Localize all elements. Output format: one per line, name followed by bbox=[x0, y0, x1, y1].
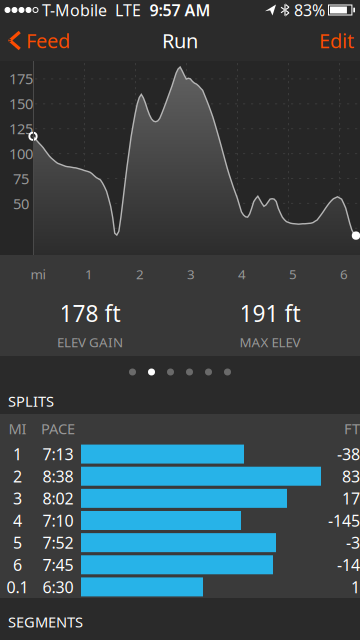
staticText: 178 ft bbox=[59, 298, 120, 328]
staticText: 7:10 bbox=[42, 510, 73, 531]
staticText: 6 bbox=[13, 554, 22, 575]
staticText: 2 bbox=[13, 466, 22, 487]
staticText: 4 bbox=[238, 265, 246, 283]
button[interactable]: Feed bbox=[0, 20, 78, 61]
staticText: 150 bbox=[9, 94, 33, 113]
staticText: -14 bbox=[337, 554, 360, 575]
staticText: 191 ft bbox=[239, 298, 300, 328]
staticText: 1 bbox=[13, 443, 22, 465]
staticText: ELEV GAIN bbox=[57, 333, 123, 351]
staticText: 7:52 bbox=[42, 532, 73, 553]
staticText: 9:57 AM bbox=[149, 0, 210, 21]
staticText: 8:02 bbox=[42, 488, 73, 509]
staticText: 7:13 bbox=[42, 443, 73, 465]
staticText: SPLITS bbox=[8, 391, 54, 411]
staticText: -3 bbox=[346, 532, 360, 553]
staticText: mi bbox=[30, 265, 45, 283]
staticText: -145 bbox=[328, 510, 360, 531]
staticText: -38 bbox=[337, 443, 360, 465]
staticText: T-Mobile bbox=[38, 0, 107, 21]
staticText: 6 bbox=[340, 265, 348, 283]
staticText: 2 bbox=[136, 265, 144, 283]
staticText: 50 bbox=[13, 194, 29, 213]
staticText: 1 bbox=[85, 265, 93, 283]
staticText: FT bbox=[344, 419, 360, 438]
staticText: 5 bbox=[13, 532, 22, 553]
staticText: MAX ELEV bbox=[239, 333, 300, 351]
staticText: 83% bbox=[294, 0, 325, 21]
staticText: Run bbox=[162, 27, 198, 54]
staticText: 83 bbox=[342, 466, 360, 487]
staticText: Edit bbox=[319, 27, 354, 54]
staticText: 3 bbox=[187, 265, 195, 283]
staticText: 5 bbox=[289, 265, 297, 283]
staticText: 6:30 bbox=[42, 576, 73, 597]
staticText: MI bbox=[8, 419, 26, 438]
button[interactable]: Edit bbox=[313, 20, 360, 61]
staticText: 4 bbox=[13, 510, 22, 531]
staticText: 7:45 bbox=[42, 554, 73, 575]
staticText: 8:38 bbox=[42, 466, 73, 487]
staticText: Feed bbox=[26, 27, 70, 54]
staticText: 75 bbox=[13, 169, 29, 188]
staticText: 125 bbox=[9, 119, 33, 138]
staticText: 17 bbox=[342, 488, 360, 509]
staticText: 3 bbox=[13, 488, 22, 509]
staticText: SEGMENTS bbox=[8, 612, 83, 631]
staticText: 1 bbox=[351, 576, 360, 597]
staticText: PACE bbox=[41, 419, 75, 438]
staticText: LTE bbox=[107, 0, 141, 21]
staticText: 175 bbox=[9, 69, 33, 88]
staticText: 100 bbox=[9, 144, 33, 163]
staticText: 0.1 bbox=[6, 576, 28, 597]
